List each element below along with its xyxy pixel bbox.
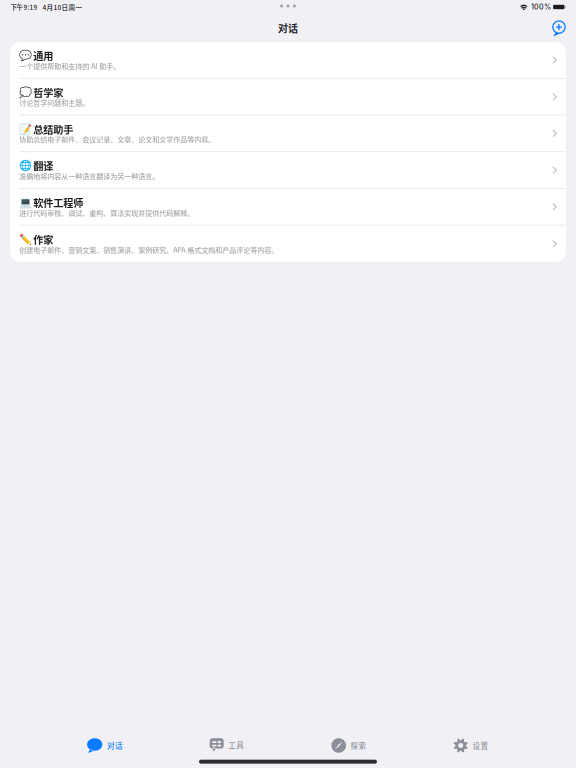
staticText: 通用 bbox=[33, 48, 53, 63]
staticText: 探索 bbox=[351, 740, 367, 751]
staticText: 总结助手 bbox=[33, 122, 73, 136]
staticText: 对话 bbox=[278, 21, 298, 35]
staticText: 工具 bbox=[228, 739, 244, 750]
button[interactable]: 设置 bbox=[410, 731, 532, 757]
button[interactable]: 对话 bbox=[44, 731, 166, 757]
staticText: 讨论哲学问题和主题。 bbox=[19, 97, 89, 108]
staticText: 🌐 bbox=[19, 160, 32, 172]
staticText: 对话 bbox=[107, 740, 123, 751]
staticText: 下午 9:19 bbox=[11, 2, 38, 12]
button[interactable]: 新建对话 bbox=[549, 17, 569, 38]
staticText: 准确地将内容从一种语言翻译为另一种语言。 bbox=[19, 171, 159, 181]
staticText: 作家 bbox=[33, 232, 53, 247]
staticText: 100% bbox=[531, 3, 551, 11]
staticText: 💭 bbox=[19, 86, 32, 98]
staticText: 进行代码审核、调试、重构、算法实现并提供代码解释。 bbox=[19, 207, 194, 218]
button[interactable]: 💭 bbox=[10, 79, 566, 115]
button[interactable]: 💬 bbox=[10, 42, 566, 79]
button[interactable]: 💻 bbox=[10, 189, 566, 225]
staticText: 💬 bbox=[19, 50, 32, 62]
staticText: 💻 bbox=[19, 196, 32, 209]
staticText: 翻译 bbox=[33, 158, 53, 173]
button[interactable]: 📝 bbox=[10, 115, 566, 152]
staticText: 设置 bbox=[473, 740, 489, 751]
button[interactable]: 工具 bbox=[166, 731, 288, 757]
staticText: 📝 bbox=[19, 123, 32, 135]
staticText: 软件工程师 bbox=[33, 195, 83, 210]
staticText: ✏️ bbox=[19, 233, 32, 246]
staticText: 一个提供帮助和支持的 AI 助手。 bbox=[19, 61, 120, 71]
button[interactable]: ✏️ bbox=[10, 225, 566, 262]
button[interactable]: 🌐 bbox=[10, 152, 566, 189]
staticText: 4月10日周一 bbox=[43, 2, 83, 12]
button[interactable]: 探索 bbox=[288, 731, 410, 757]
staticText: 哲学家 bbox=[33, 85, 63, 100]
staticText: 协助总结电子邮件、会议记录、文章、论文和文学作品等内容。 bbox=[19, 134, 215, 144]
staticText: 创建电子邮件、营销文案、销售演讲、案例研究、APA 格式文档和产品评论等内容。 bbox=[19, 244, 278, 255]
